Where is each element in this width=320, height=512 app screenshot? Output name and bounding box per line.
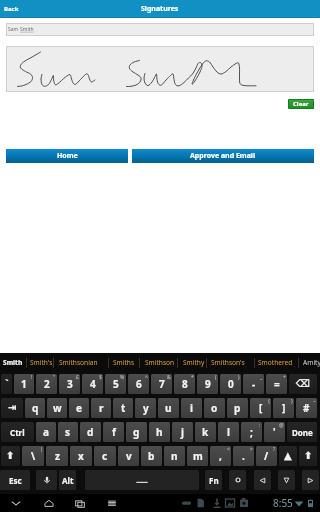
button[interactable]: 1: [14, 374, 34, 394]
button[interactable]: 9: [197, 374, 218, 394]
staticText: l: [227, 425, 230, 439]
staticText: Fn: [209, 475, 219, 486]
button[interactable]: \: [22, 446, 44, 466]
button[interactable]: Smithsonian: [57, 353, 100, 372]
button[interactable]: p: [227, 398, 248, 418]
staticText: p: [234, 401, 241, 415]
button[interactable]: j: [172, 422, 193, 442]
staticText: /: [264, 449, 269, 463]
button[interactable]: /: [256, 446, 277, 466]
staticText: 8:55: [273, 496, 293, 510]
button[interactable]: Smithson's: [209, 353, 247, 372]
button[interactable]: Smith: [1, 353, 25, 372]
button[interactable]: Ctrl: [1, 422, 34, 442]
staticText: c: [102, 449, 108, 463]
button[interactable]: Sam: [6, 23, 314, 36]
button[interactable]: a: [36, 422, 56, 442]
button[interactable]: t: [113, 398, 133, 418]
button[interactable]: Hide keyboard: [10, 497, 22, 509]
button[interactable]: e: [69, 398, 89, 418]
button[interactable]: 7: [151, 374, 172, 394]
staticText: ): [238, 374, 240, 381]
button[interactable]: u: [158, 398, 179, 418]
button[interactable]: down: [278, 470, 295, 490]
button[interactable]: Approve and Email: [132, 149, 314, 163]
button[interactable]: 2: [36, 374, 57, 394]
button[interactable]: Home: [43, 497, 55, 509]
staticText: .: [242, 449, 245, 463]
button[interactable]: Done: [287, 422, 317, 442]
button[interactable]: ▲: [279, 446, 297, 466]
button[interactable]: ⇥: [1, 398, 23, 418]
button[interactable]: #: [296, 398, 317, 418]
button[interactable]: ⬆: [299, 446, 317, 466]
button[interactable]: 5: [105, 374, 126, 394]
staticText: Sam: [8, 26, 20, 33]
button[interactable]: ]: [273, 398, 294, 418]
button[interactable]: Smithy: [181, 353, 207, 372]
button[interactable]: b: [141, 446, 162, 466]
button[interactable]: =: [266, 374, 287, 394]
button[interactable]: y: [135, 398, 156, 418]
button[interactable]: mic: [36, 470, 57, 490]
button[interactable]: Smiths: [111, 353, 137, 372]
button[interactable]: .: [233, 446, 254, 466]
staticText: Clear: [293, 100, 309, 108]
button[interactable]: Smith's: [28, 353, 55, 372]
button[interactable]: Recent apps: [74, 497, 86, 509]
button[interactable]: z: [46, 446, 68, 466]
button[interactable]: ,: [210, 446, 231, 466]
staticText: £: [76, 374, 79, 381]
button[interactable]: c: [94, 446, 116, 466]
button[interactable]: Smithson: [143, 353, 177, 372]
button[interactable]: Home: [6, 149, 128, 163]
button[interactable]: l: [218, 422, 239, 442]
button[interactable]: Back: [2, 4, 21, 14]
button[interactable]: left: [254, 470, 271, 490]
button[interactable]: n: [164, 446, 185, 466]
button[interactable]: m: [187, 446, 208, 466]
button[interactable]: Alt: [59, 470, 76, 490]
staticText: Done: [292, 427, 313, 438]
button[interactable]: Amity: [301, 353, 320, 372]
button[interactable]: Esc: [0, 470, 30, 490]
button[interactable]: ⬆: [1, 446, 20, 466]
button[interactable]: 4: [82, 374, 103, 394]
button[interactable]: s: [58, 422, 78, 442]
button[interactable]: Smothered: [256, 353, 295, 372]
button[interactable]: v: [118, 446, 139, 466]
staticText: ": [53, 374, 56, 381]
button[interactable]: w: [47, 398, 67, 418]
button[interactable]: [85, 470, 199, 490]
button[interactable]: r: [91, 398, 111, 418]
staticText: Esc: [9, 475, 22, 486]
button[interactable]: circle: [229, 470, 246, 490]
button[interactable]: 0: [220, 374, 241, 394]
button[interactable]: h: [149, 422, 170, 442]
button[interactable]: o: [204, 398, 225, 418]
button[interactable]: Clear: [288, 99, 314, 109]
button[interactable]: 6: [128, 374, 149, 394]
staticText: Signatures: [141, 4, 179, 14]
button[interactable]: d: [80, 422, 101, 442]
button[interactable]: Menu: [106, 497, 118, 509]
button[interactable]: k: [195, 422, 216, 442]
button[interactable]: q: [25, 398, 45, 418]
staticText: 0: [228, 377, 234, 391]
button[interactable]: f: [103, 422, 124, 442]
button[interactable]: 8: [174, 374, 195, 394]
button[interactable]: g: [126, 422, 147, 442]
button[interactable]: ': [264, 422, 285, 442]
staticText: -: [252, 377, 256, 391]
staticText: Smith: [3, 358, 23, 367]
button[interactable]: [: [250, 398, 271, 418]
button[interactable]: `: [1, 374, 12, 394]
button[interactable]: right: [302, 470, 319, 490]
button[interactable]: Fn: [205, 470, 222, 490]
button[interactable]: 3: [59, 374, 80, 394]
button[interactable]: x: [70, 446, 92, 466]
button[interactable]: i: [181, 398, 202, 418]
button[interactable]: -: [243, 374, 264, 394]
button[interactable]: ;: [241, 422, 262, 442]
button[interactable]: ⌫: [289, 374, 317, 394]
